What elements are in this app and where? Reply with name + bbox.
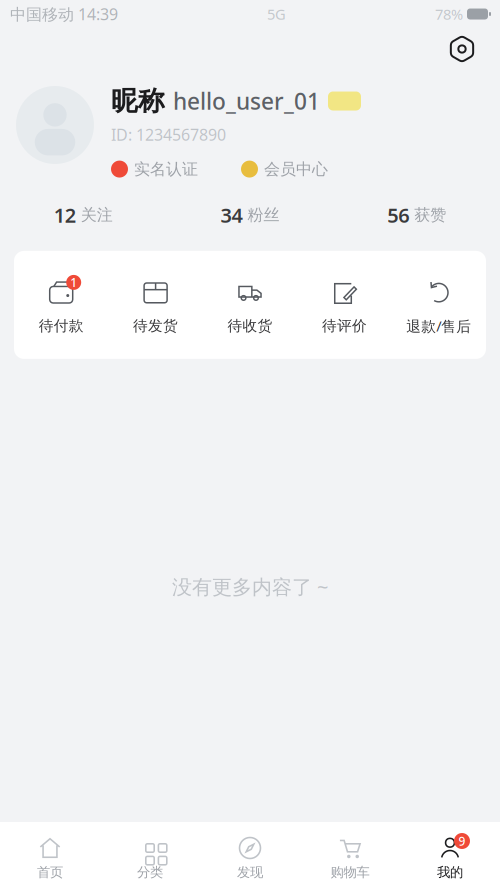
staticText: 没有更多内容了 ~ bbox=[172, 573, 328, 600]
staticText: 实名认证 bbox=[134, 159, 198, 179]
staticText: 9 bbox=[458, 833, 465, 849]
button[interactable]: 34 bbox=[167, 197, 333, 233]
button[interactable]: 9 bbox=[400, 822, 500, 889]
staticText: 分类 bbox=[137, 864, 163, 880]
staticText: 78% bbox=[435, 4, 463, 24]
button[interactable]: 分类 bbox=[100, 822, 200, 889]
button[interactable]: 首页 bbox=[0, 822, 100, 889]
staticText: 获赞 bbox=[414, 205, 446, 225]
button[interactable]: 12 bbox=[0, 197, 167, 233]
staticText: 待发货 bbox=[133, 317, 178, 335]
button[interactable]: 购物车 bbox=[300, 822, 400, 889]
button[interactable]: 会员中心 bbox=[241, 159, 335, 179]
staticText: 56 bbox=[387, 202, 409, 228]
staticText: hello_user_01 bbox=[173, 86, 320, 116]
staticText: 昵称 bbox=[111, 85, 165, 117]
staticText: 发现 bbox=[237, 864, 263, 880]
button[interactable]: 1 bbox=[14, 251, 108, 359]
staticText: 我的 bbox=[437, 864, 463, 880]
button[interactable]: 待评价 bbox=[297, 251, 392, 359]
staticText: 34 bbox=[220, 202, 242, 228]
button[interactable]: 头像 bbox=[16, 86, 94, 164]
staticText: 首页 bbox=[37, 864, 63, 880]
button[interactable]: 56 bbox=[333, 197, 500, 233]
button[interactable]: 实名认证 bbox=[111, 159, 225, 179]
staticText: 粉丝 bbox=[247, 205, 279, 225]
staticText: ID: 1234567890 bbox=[111, 124, 226, 145]
button[interactable]: 待发货 bbox=[108, 251, 203, 359]
button[interactable]: 退款/售后 bbox=[392, 251, 486, 359]
staticText: 退款/售后 bbox=[406, 316, 471, 336]
button[interactable]: 发现 bbox=[200, 822, 300, 889]
staticText: 1 bbox=[70, 274, 77, 290]
staticText: 待评价 bbox=[322, 317, 367, 335]
button[interactable]: 待收货 bbox=[203, 251, 297, 359]
staticText: 5G bbox=[267, 4, 286, 24]
staticText: 中国移动 14:39 bbox=[10, 3, 118, 25]
staticText: 待付款 bbox=[39, 317, 84, 335]
staticText: 购物车 bbox=[330, 864, 369, 880]
staticText: 会员中心 bbox=[264, 159, 328, 179]
staticText: 12 bbox=[54, 202, 76, 228]
staticText: 关注 bbox=[81, 205, 113, 225]
staticText: 待收货 bbox=[227, 317, 272, 335]
button[interactable]: 设置 bbox=[448, 35, 476, 63]
